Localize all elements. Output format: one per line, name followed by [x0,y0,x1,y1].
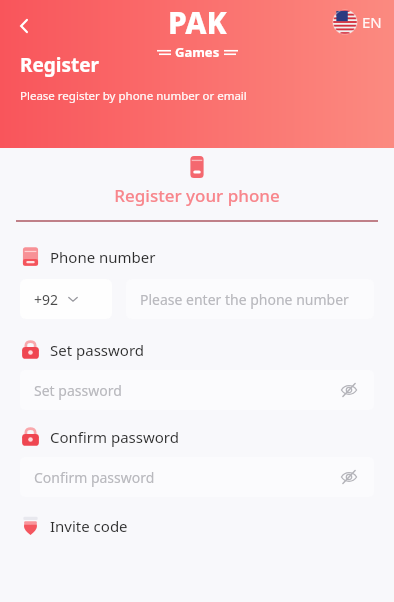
staticText: Set password [34,381,338,400]
staticText: Register your phone [0,184,394,207]
staticText: Register [20,52,100,78]
button[interactable]: Show password [338,466,360,488]
button[interactable]: Set password [20,339,394,360]
staticText: Please enter the phone number [140,290,349,309]
staticText: PAK [168,2,227,43]
button[interactable]: Set password [20,370,374,410]
button[interactable]: EN [329,6,386,38]
staticText: Confirm password [50,427,179,447]
staticText: Set password [50,340,145,360]
staticText: Invite code [50,516,128,536]
button[interactable]: Please enter the phone number [126,279,374,319]
button[interactable]: Confirm password [20,426,394,447]
staticText: Please register by phone number or email [20,88,247,104]
button[interactable]: Phone number [20,246,394,267]
button[interactable]: Show password [338,379,360,401]
button[interactable]: Invite code [20,515,394,536]
button[interactable]: Confirm password [20,457,374,497]
button[interactable]: +92 [20,279,112,319]
staticText: Phone number [50,247,156,267]
staticText: Games [175,43,220,61]
staticText: EN [362,12,382,32]
staticText: +92 [34,290,59,309]
staticText: Confirm password [34,468,338,487]
button[interactable]: Back [6,8,42,44]
